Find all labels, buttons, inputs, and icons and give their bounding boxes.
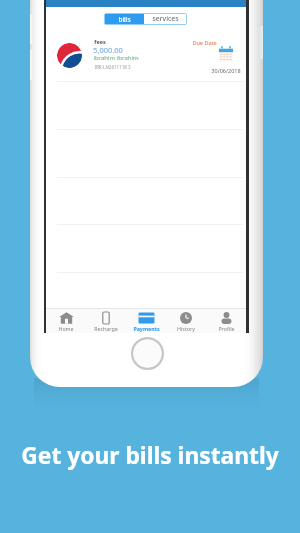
staticText: fees — [94, 38, 106, 45]
button[interactable]: History — [166, 309, 206, 333]
staticText: History — [177, 325, 195, 332]
staticText: Get your bills instantly — [21, 440, 279, 471]
staticText: Profile — [218, 325, 235, 332]
button[interactable]: Profile — [206, 309, 246, 333]
staticText: Due Date — [192, 39, 217, 46]
button[interactable]: fees — [46, 31, 246, 79]
staticText: IBR-LN2611118 3 — [94, 64, 131, 70]
staticText: Home — [58, 325, 74, 332]
staticText: Payments — [133, 325, 160, 332]
button[interactable]: Recharge — [86, 309, 126, 333]
staticText: Recharge — [94, 325, 118, 332]
button[interactable]: Payments — [126, 309, 166, 333]
button[interactable]: services — [144, 14, 186, 24]
button[interactable]: bills — [105, 14, 144, 24]
staticText: bills — [118, 15, 131, 24]
button[interactable]: Home — [46, 309, 86, 333]
staticText: 5,000.00 — [93, 45, 123, 55]
staticText: 30/06/2018 — [211, 67, 241, 74]
staticText: services — [152, 14, 179, 24]
staticText: ibrahim ibrahim — [93, 54, 139, 62]
